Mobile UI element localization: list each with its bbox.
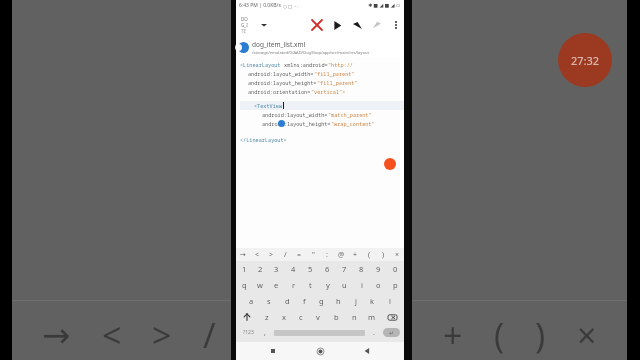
button[interactable]: ) [376,248,390,261]
staticText: = [297,250,302,260]
button[interactable]: 1 [236,261,252,277]
button[interactable]: 7 [336,261,353,277]
button[interactable]: @ [334,248,348,261]
staticText: i [361,280,363,290]
button[interactable]: n [345,309,363,325]
staticText: × [577,312,597,358]
staticText: "http://schemas.android.co [328,61,404,68]
button[interactable]: d [278,293,296,309]
button[interactable]: w [252,277,268,293]
button[interactable]: Backspace [381,309,404,325]
staticText: <LinearLayout [240,61,281,68]
staticText: q [242,280,247,290]
staticText: d [285,296,290,306]
button[interactable]: l [381,293,398,309]
button[interactable]: m [363,309,381,325]
button[interactable]: y [319,277,336,293]
button[interactable]: r [285,277,302,293]
staticText: @ [338,250,345,260]
staticText: "vertical"> [311,88,346,95]
staticText: 4 [291,264,296,274]
button[interactable]: More options [390,19,401,30]
button[interactable]: Back [357,342,377,360]
button[interactable]: 4 [285,261,302,277]
staticText: android:layout_height= [262,120,331,127]
button[interactable]: Recent apps [263,342,283,360]
button[interactable]: t [302,277,319,293]
button[interactable]: 8 [353,261,370,277]
button[interactable]: Home [310,342,330,360]
button[interactable]: ( [362,248,376,261]
button[interactable]: Device dropdown [259,20,268,29]
button[interactable]: ?123 [238,325,258,340]
button[interactable]: " [306,248,320,261]
staticText: 27:32 [571,53,600,68]
button[interactable]: s [260,293,278,309]
button[interactable]: a [242,293,260,309]
button[interactable]: e [268,277,285,293]
button[interactable]: . [367,325,380,340]
staticText: ?123 [243,329,254,336]
button[interactable]: , [258,325,271,340]
staticText: → [240,251,246,259]
staticText: ) [382,250,385,260]
button[interactable]: f [296,293,313,309]
button[interactable]: u [336,277,353,293]
button[interactable]: dog_item_list.xml [236,38,404,57]
staticText: g [319,296,324,306]
staticText: t [309,280,312,290]
staticText: ( [494,312,505,358]
button[interactable]: Run [384,158,396,170]
staticText: + [443,312,463,358]
staticText: </LinearLayout> [240,136,287,143]
staticText: k [370,296,375,306]
button[interactable]: 6 [319,261,336,277]
staticText: v [316,312,320,322]
button[interactable]: Module selector [241,16,248,34]
button[interactable]: q [236,277,252,293]
button[interactable]: i [353,277,370,293]
staticText: android:orientation= [248,88,311,95]
button[interactable]: Stop [310,18,323,31]
button[interactable]: x [275,309,292,325]
button[interactable]: < [250,248,264,261]
button[interactable]: + [348,248,362,261]
staticText: "fill_parent" [314,70,355,77]
button[interactable]: Recording timer [558,33,612,87]
button[interactable]: c [292,309,309,325]
button[interactable]: Enter [380,325,402,340]
button[interactable]: b [327,309,345,325]
staticText: DO [241,16,248,22]
button[interactable]: : [320,248,334,261]
button[interactable]: 9 [370,261,387,277]
button[interactable]: 2 [252,261,268,277]
button[interactable]: × [390,248,404,261]
button[interactable]: z [258,309,275,325]
staticText: 2 [258,264,263,274]
button[interactable]: o [370,277,387,293]
button[interactable]: j [347,293,364,309]
button[interactable]: v [309,309,327,325]
button[interactable]: Run app [331,19,343,31]
staticText: e [274,280,279,290]
button[interactable]: → [236,248,250,261]
button[interactable]: 0 [387,261,404,277]
button[interactable]: p [387,277,404,293]
button[interactable]: h [330,293,347,309]
button[interactable]: / [278,248,292,261]
button[interactable]: = [292,248,306,261]
button[interactable]: > [264,248,278,261]
button[interactable]: Shift [236,309,258,325]
button[interactable]: 5 [302,261,319,277]
staticText: 6:43 PM | 0.0KB/s [239,2,281,9]
staticText: 3 [274,264,279,274]
button[interactable]: 3 [268,261,285,277]
staticText: y [326,280,330,290]
button[interactable]: Undo [351,19,363,31]
button[interactable]: g [313,293,330,309]
staticText: "match_parent" [328,111,372,118]
staticText: , [264,328,266,338]
staticText: < [255,250,260,260]
button[interactable]: Space [271,325,367,340]
button[interactable]: k [364,293,381,309]
